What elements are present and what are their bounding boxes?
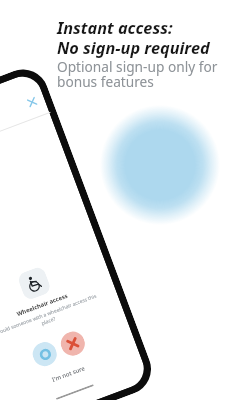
staticText: Wheelchair access: [16, 292, 69, 318]
staticText: Optional sign-up only for bonus features: [57, 57, 218, 91]
staticText: Would someone with a wheelchair access t…: [0, 292, 102, 344]
button[interactable]: Yes: [29, 339, 60, 370]
button[interactable]: Close: [21, 91, 42, 112]
staticText: Instant access: No sign-up required: [57, 17, 210, 59]
button[interactable]: I'm not sure: [51, 364, 86, 384]
button[interactable]: No: [57, 328, 88, 359]
staticText: I'm not sure: [51, 364, 86, 384]
